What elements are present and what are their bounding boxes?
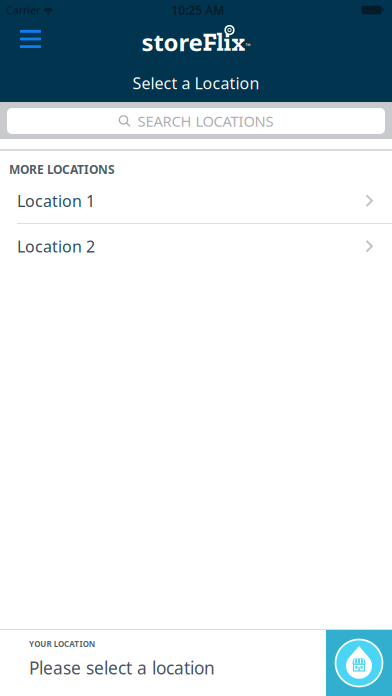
staticText: Location 1 bbox=[17, 190, 95, 211]
staticText: Select a Location bbox=[132, 72, 259, 94]
button[interactable]: Menu bbox=[0, 25, 55, 59]
staticText: YOUR LOCATION bbox=[29, 639, 96, 649]
staticText: 10:25 AM bbox=[171, 2, 224, 18]
button[interactable]: Open store locator bbox=[326, 630, 392, 696]
staticText: Location 2 bbox=[17, 236, 95, 257]
staticText: Please select a location bbox=[29, 656, 215, 679]
staticText: Carrier bbox=[6, 3, 40, 17]
staticText: Flix bbox=[202, 27, 245, 57]
button[interactable]: Location 1 bbox=[0, 178, 392, 223]
staticText: MORE LOCATIONS bbox=[9, 161, 115, 177]
button[interactable]: Location 2 bbox=[0, 224, 392, 268]
staticText: store bbox=[141, 26, 202, 58]
staticText: ™ bbox=[245, 42, 250, 50]
staticText: SEARCH LOCATIONS bbox=[137, 111, 273, 131]
